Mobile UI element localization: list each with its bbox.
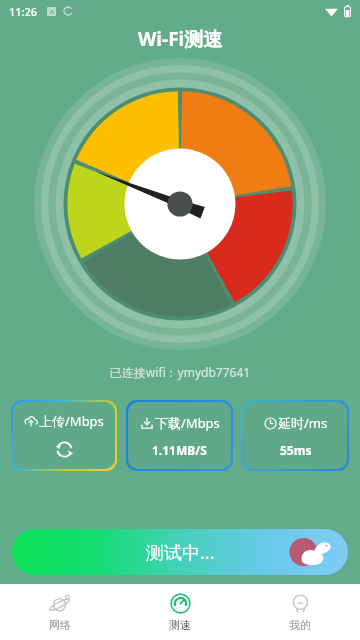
button[interactable]: 下载/Mbps [128, 402, 231, 469]
other: Profile [290, 593, 311, 614]
staticText: 下载/Mbps [155, 414, 220, 432]
staticText: 上传/Mbps [39, 412, 104, 430]
staticText: 已连接wifi：ymydb77641 [0, 364, 360, 380]
staticText: 网络 [49, 618, 71, 632]
button[interactable]: 延时/ms [244, 402, 347, 469]
staticText: 测试中... [146, 540, 215, 565]
staticText: 延时/ms [278, 414, 328, 432]
staticText: 11:26 [9, 4, 38, 19]
staticText: 测速 [169, 618, 191, 632]
button[interactable]: Network [0, 584, 120, 640]
staticText: A [50, 8, 54, 16]
button[interactable]: Profile [240, 584, 360, 640]
other: Network [50, 593, 71, 614]
button[interactable]: Speed test [120, 584, 240, 640]
staticText: Wi-Fi测速 [138, 26, 223, 52]
other: Speed test [170, 593, 191, 614]
button[interactable]: 上传/Mbps [13, 402, 115, 469]
button[interactable]: 测试中... [12, 529, 348, 575]
staticText: 55ms [280, 442, 312, 458]
staticText: 我的 [289, 618, 311, 632]
staticText: 1.11MB/S [152, 442, 207, 458]
